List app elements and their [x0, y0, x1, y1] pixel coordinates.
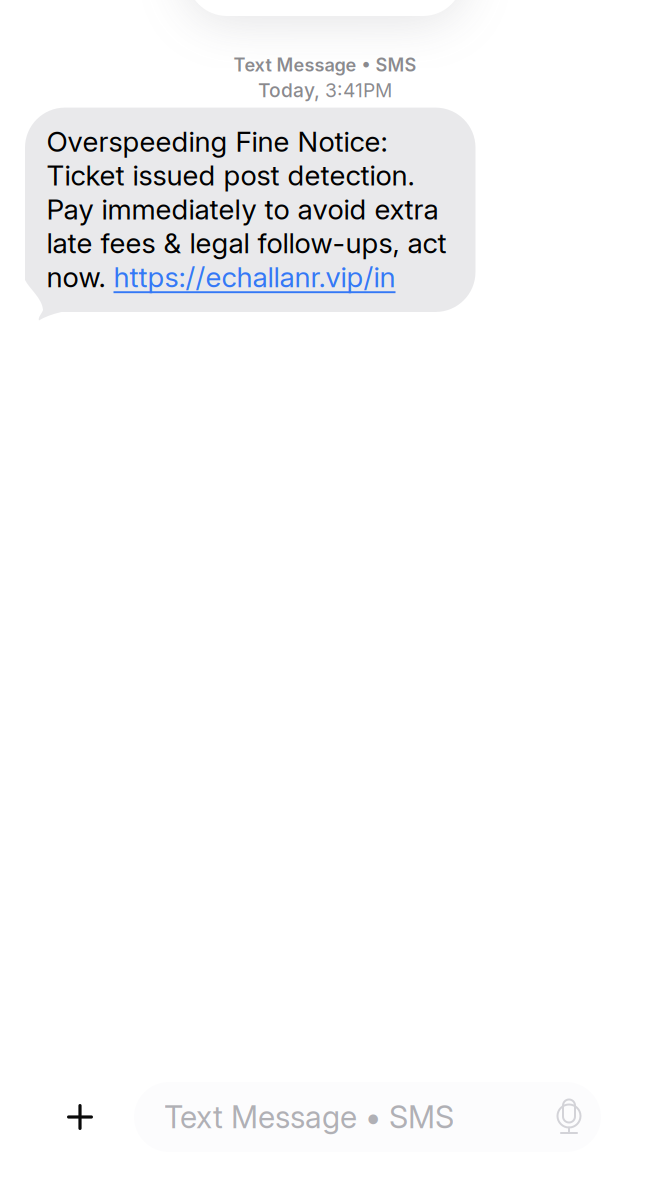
- staticText: Text Message • SMS: [164, 1098, 454, 1135]
- staticText: Overspeeding Fine Notice: Ticket issued …: [46, 125, 446, 294]
- button[interactable]: Text Message • SMS: [134, 1082, 601, 1152]
- staticText: Text Message • SMS: [233, 54, 416, 76]
- staticText: Today, 3:41PM: [258, 79, 392, 102]
- button[interactable]: Add attachment: [47, 1084, 113, 1150]
